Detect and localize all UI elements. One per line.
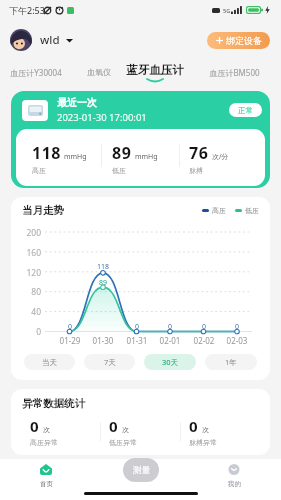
staticText: 次 <box>202 425 209 434</box>
staticText: 当月走势 <box>22 204 64 217</box>
staticText: 02-01 <box>155 335 185 346</box>
staticText: 高压异常 <box>30 438 58 447</box>
staticText: 次 <box>43 425 50 434</box>
staticText: 次 <box>122 425 129 434</box>
staticText: 5G <box>223 7 231 14</box>
staticText: 蓝牙血压计 <box>126 63 184 77</box>
staticText: 脉搏 <box>189 166 203 175</box>
staticText: 1年 <box>225 357 237 367</box>
button[interactable]: 蓝牙血压计 <box>123 60 187 84</box>
button[interactable]: 血压计Y30004 <box>7 60 65 84</box>
button[interactable]: 测量 <box>123 458 159 482</box>
staticText: 0 <box>11 326 41 338</box>
staticText: 血压计BM500 <box>209 67 260 78</box>
staticText: 160 <box>11 247 41 259</box>
staticText: 异常数据统计 <box>22 397 85 410</box>
button[interactable]: wld <box>10 29 73 51</box>
staticText: 低压异常 <box>109 438 137 447</box>
staticText: 0 <box>189 416 199 436</box>
button[interactable]: 血氧仪 <box>70 60 128 84</box>
staticText: 脉搏异常 <box>189 438 217 447</box>
staticText: 我的 <box>228 480 241 488</box>
button[interactable]: 30天 <box>144 354 196 370</box>
staticText: 120 <box>11 267 41 279</box>
button[interactable]: 血压计BM500 <box>205 60 263 84</box>
staticText: 次/分 <box>212 152 229 162</box>
staticText: 0 <box>192 322 216 332</box>
staticText: 高压 <box>212 206 226 215</box>
staticText: 89 <box>91 278 115 288</box>
staticText: 血压计Y30004 <box>10 67 62 78</box>
staticText: 0 <box>30 416 40 436</box>
button[interactable]: 7天 <box>84 354 135 370</box>
staticText: 0 <box>109 416 119 436</box>
staticText: 首页 <box>40 480 53 488</box>
staticText: mmHg <box>135 152 158 162</box>
staticText: 低压 <box>112 166 126 175</box>
button[interactable]: 当天 <box>24 354 75 370</box>
staticText: 低压 <box>245 206 259 215</box>
button[interactable]: 正常 <box>229 103 262 117</box>
staticText: 118 <box>32 142 61 164</box>
staticText: 高压 <box>32 166 46 175</box>
staticText: 30天 <box>162 357 179 367</box>
button[interactable]: 首页 <box>28 464 64 488</box>
staticText: 80 <box>11 286 41 298</box>
button[interactable]: 绑定设备 <box>207 32 270 49</box>
staticText: 01-29 <box>55 335 85 346</box>
staticText: 7天 <box>104 357 116 367</box>
button[interactable]: 我的 <box>216 464 252 488</box>
staticText: 40 <box>11 306 41 318</box>
button[interactable]: 1年 <box>205 354 257 370</box>
staticText: 200 <box>11 227 41 239</box>
staticText: 最近一次 <box>57 96 97 109</box>
staticText: 血氧仪 <box>87 67 111 77</box>
staticText: 02-02 <box>189 335 219 346</box>
staticText: 测量 <box>133 465 150 476</box>
staticText: 绑定设备 <box>226 35 262 46</box>
staticText: 0 <box>158 322 182 332</box>
staticText: 2023-01-30 17:00:01 <box>57 111 147 124</box>
staticText: 89 <box>112 142 132 164</box>
staticText: 当天 <box>42 358 57 367</box>
staticText: 01-31 <box>122 335 152 346</box>
staticText: 0 <box>125 322 149 332</box>
staticText: 正常 <box>238 106 253 115</box>
staticText: 118 <box>91 262 115 272</box>
staticText: 0 <box>58 322 82 332</box>
staticText: wld <box>40 32 60 48</box>
staticText: 76 <box>189 142 209 164</box>
staticText: 01-30 <box>88 335 118 346</box>
staticText: mmHg <box>64 152 87 162</box>
staticText: 下午2:53 <box>9 4 45 16</box>
staticText: 02-03 <box>222 335 252 346</box>
staticText: 0 <box>225 322 249 332</box>
